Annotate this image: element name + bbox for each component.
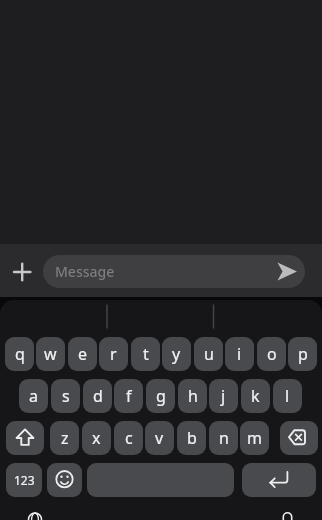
button[interactable]: n <box>209 421 238 455</box>
staticText: t <box>143 343 149 365</box>
button[interactable]: w <box>36 337 65 371</box>
button[interactable]: d <box>83 379 112 413</box>
staticText: j <box>221 385 226 407</box>
button[interactable]: g <box>146 379 175 413</box>
button[interactable]: f <box>114 379 143 413</box>
button[interactable] <box>242 463 316 497</box>
staticText: m <box>247 427 262 449</box>
staticText: a <box>29 385 38 407</box>
button[interactable] <box>6 421 44 455</box>
staticText: l <box>285 385 290 407</box>
button[interactable]: t <box>131 337 160 371</box>
staticText: f <box>126 385 132 407</box>
staticText: w <box>44 343 57 365</box>
staticText: q <box>15 343 25 365</box>
button[interactable]: u <box>194 337 223 371</box>
button[interactable]: v <box>145 421 174 455</box>
staticText: c <box>125 427 133 449</box>
staticText: g <box>156 385 166 407</box>
button[interactable]: z <box>50 421 79 455</box>
staticText: s <box>62 385 70 407</box>
staticText: k <box>251 385 260 407</box>
button[interactable]: k <box>241 379 270 413</box>
button[interactable]: r <box>99 337 128 371</box>
button[interactable] <box>47 463 82 497</box>
button[interactable]: e <box>68 337 97 371</box>
button[interactable]: a <box>19 379 48 413</box>
staticText: o <box>267 343 277 365</box>
button[interactable]: Message <box>43 255 305 288</box>
button[interactable]: x <box>82 421 111 455</box>
button[interactable]: b <box>177 421 206 455</box>
staticText: n <box>219 427 229 449</box>
staticText: u <box>204 343 214 365</box>
button[interactable]: c <box>114 421 143 455</box>
button[interactable] <box>280 421 318 455</box>
button[interactable]: q <box>5 337 34 371</box>
button[interactable]: m <box>240 421 269 455</box>
staticText: p <box>298 343 308 365</box>
staticText: r <box>110 343 117 365</box>
button[interactable]: h <box>178 379 207 413</box>
button[interactable] <box>6 255 39 288</box>
staticText: d <box>93 385 103 407</box>
button[interactable]: y <box>162 337 191 371</box>
button[interactable]: i <box>225 337 254 371</box>
staticText: x <box>92 427 101 449</box>
button[interactable]: p <box>288 337 317 371</box>
button[interactable]: l <box>273 379 302 413</box>
button[interactable]: j <box>209 379 238 413</box>
staticText: z <box>61 427 69 449</box>
button[interactable]: 123 <box>6 463 42 497</box>
button[interactable]: o <box>257 337 286 371</box>
button[interactable]: s <box>51 379 80 413</box>
staticText: Message <box>55 262 115 281</box>
staticText: i <box>237 343 242 365</box>
staticText: e <box>78 343 88 365</box>
staticText: b <box>187 427 197 449</box>
button[interactable] <box>87 463 234 497</box>
staticText: y <box>172 343 181 365</box>
staticText: h <box>188 385 198 407</box>
staticText: 123 <box>14 472 35 488</box>
staticText: v <box>155 427 164 449</box>
